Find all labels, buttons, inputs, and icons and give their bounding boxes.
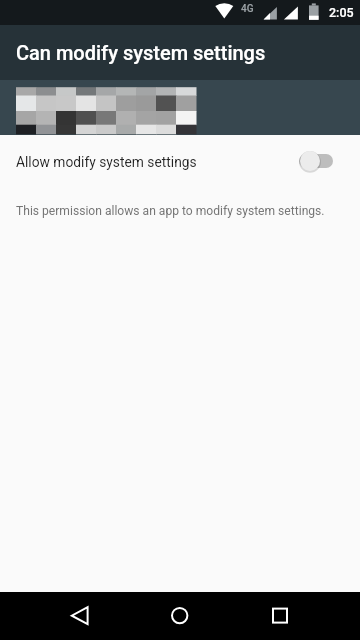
staticText: 4G: [241, 3, 254, 15]
button[interactable]: Can modify system settings: [0, 25, 360, 80]
button[interactable]: Back: [50, 592, 110, 640]
staticText: 2:05: [329, 5, 354, 20]
staticText: Can modify system settings: [16, 41, 266, 64]
button[interactable]: Home: [150, 592, 210, 640]
button[interactable]: Allow modify system settings: [0, 135, 360, 187]
staticText: This permission allows an app to modify …: [16, 204, 360, 218]
button[interactable]: Recent apps: [250, 592, 310, 640]
button[interactable]: Allow modify system settings toggle: [299, 149, 333, 173]
staticText: Allow modify system settings: [16, 154, 197, 170]
